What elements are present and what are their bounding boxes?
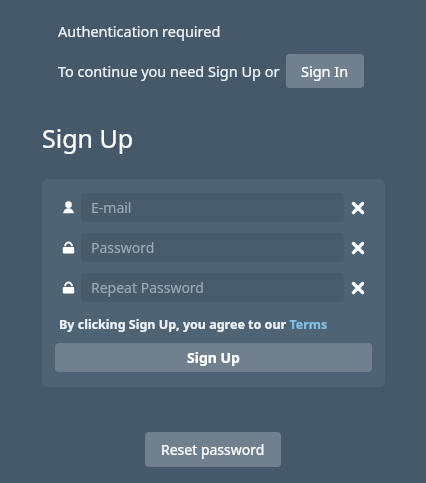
staticText: Reset password <box>161 440 265 459</box>
staticText: E-mail <box>91 198 132 217</box>
staticText: By clicking Sign Up, you agree to our Te… <box>59 316 328 333</box>
button[interactable]: Clear Password <box>344 233 372 262</box>
button[interactable]: E-mail <box>81 193 344 222</box>
staticText: Sign Up <box>42 121 134 155</box>
button[interactable]: Repeat Password <box>81 273 344 302</box>
button[interactable]: Sign In <box>286 54 364 88</box>
button[interactable]: Password <box>81 233 344 262</box>
button[interactable]: Reset password <box>145 432 281 467</box>
staticText: To continue you need Sign Up or <box>58 61 280 81</box>
staticText: Sign In <box>301 61 349 81</box>
button[interactable]: Clear E-mail <box>344 193 372 222</box>
staticText: Authentication required <box>58 21 221 41</box>
button[interactable]: Clear Repeat Password <box>344 273 372 302</box>
staticText: Repeat Password <box>91 278 204 297</box>
staticText: Sign Up <box>187 348 240 367</box>
button[interactable]: Sign Up <box>55 343 372 372</box>
staticText: Password <box>91 238 155 257</box>
